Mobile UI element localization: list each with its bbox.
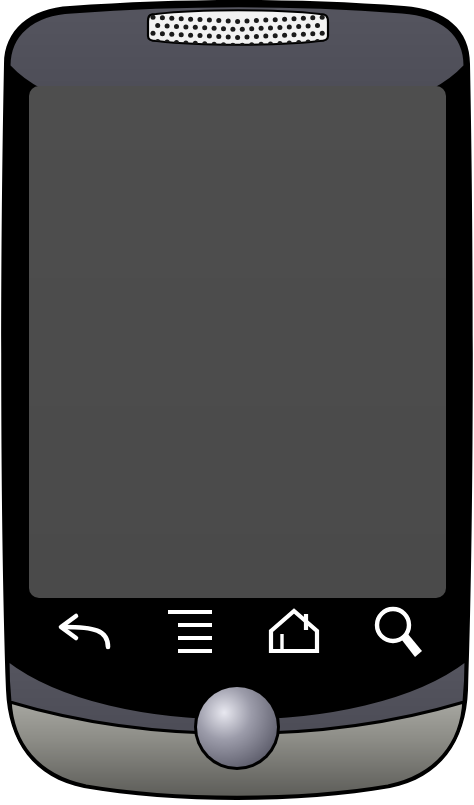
button[interactable]: Trackball: [194, 684, 280, 770]
button[interactable]: Home: [250, 607, 338, 659]
button[interactable]: Android smartphone illustration: [0, 0, 474, 805]
button[interactable]: Back: [38, 607, 126, 659]
button[interactable]: Search: [352, 607, 440, 659]
button[interactable]: Menu: [146, 607, 234, 659]
